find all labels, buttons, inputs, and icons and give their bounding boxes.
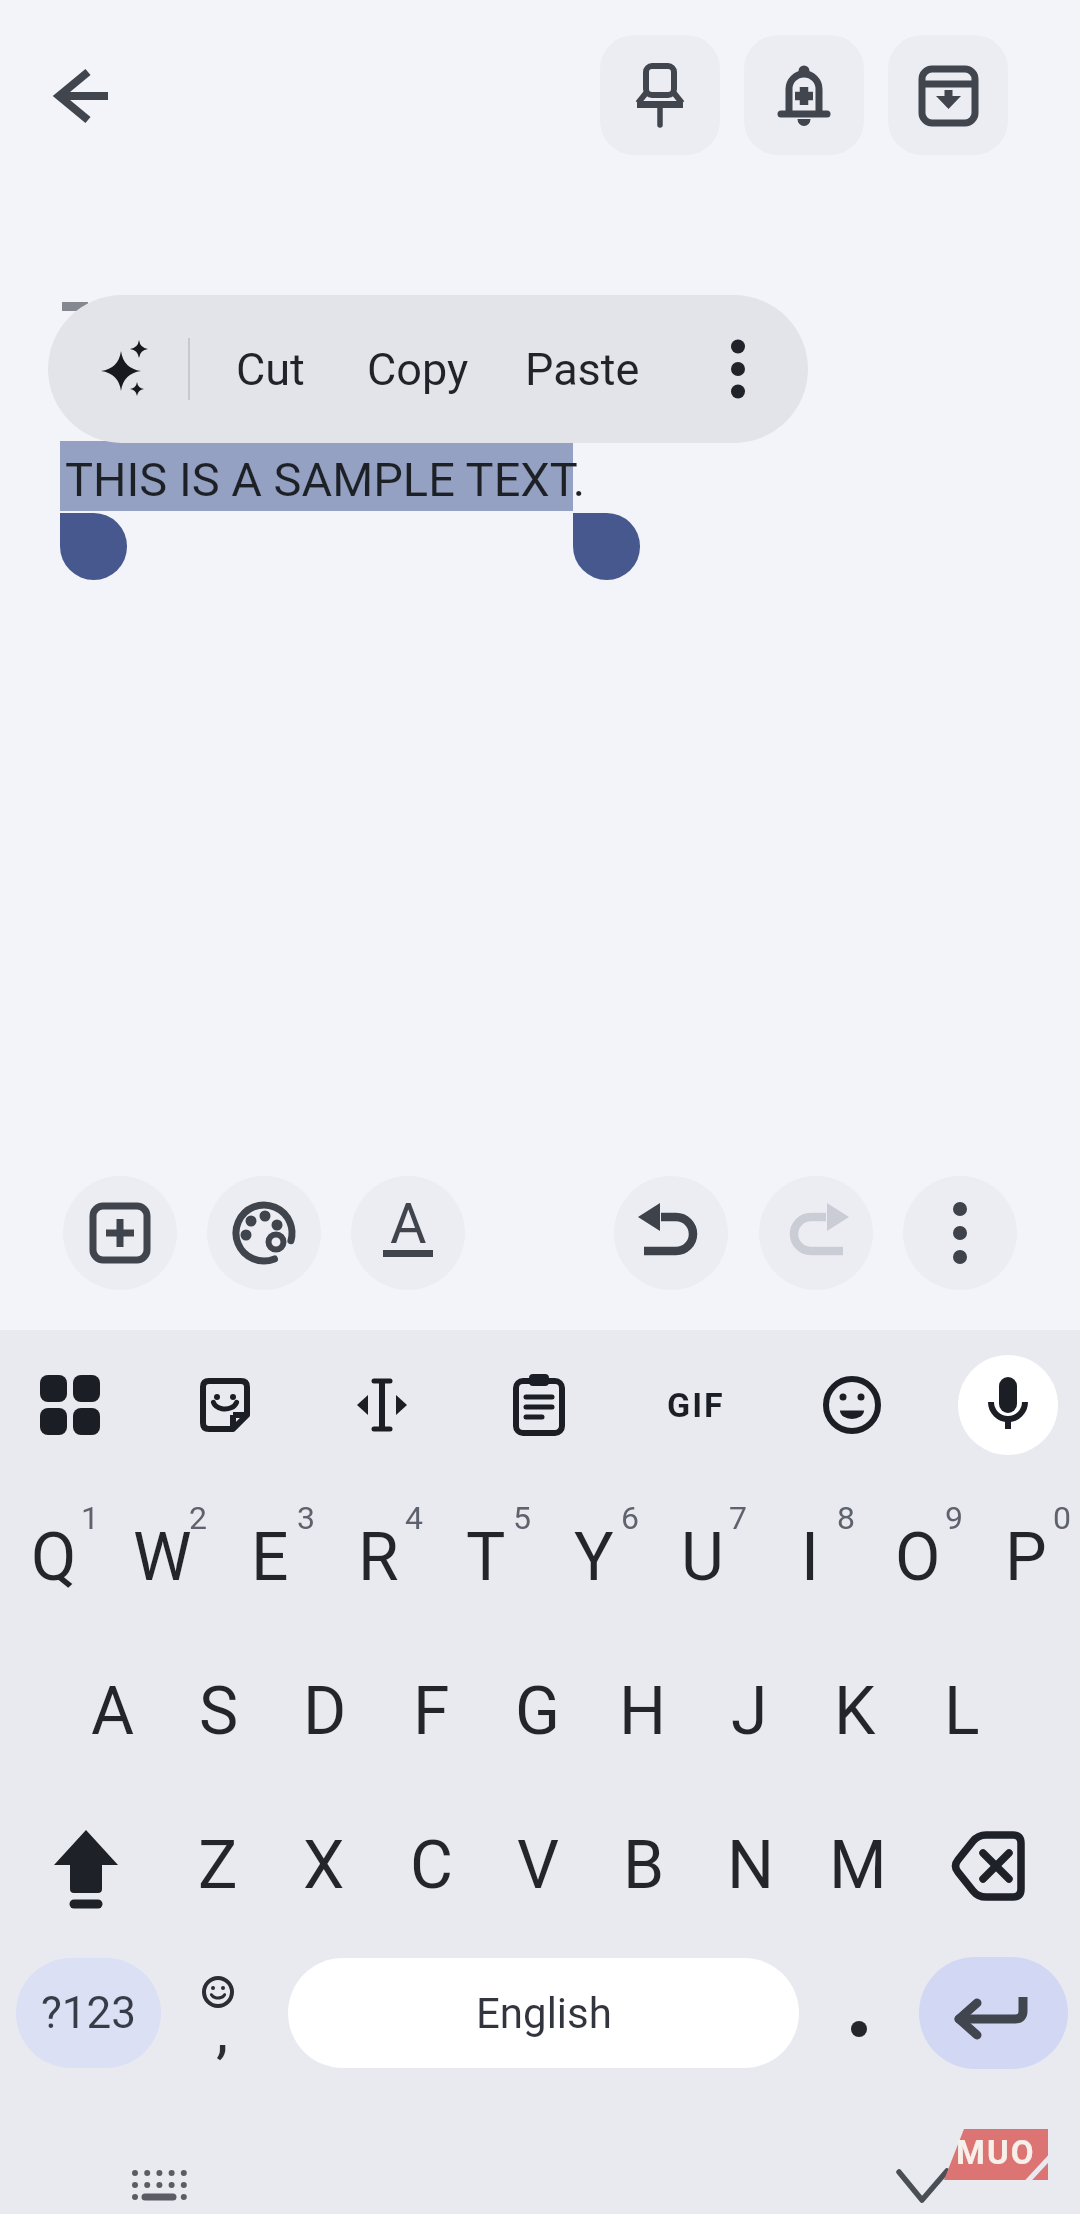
button[interactable]: Paste	[517, 295, 647, 443]
staticText: D	[303, 1673, 347, 1750]
button[interactable]: K	[801, 1671, 909, 1751]
button[interactable]: I	[756, 1517, 864, 1597]
staticText: 8	[837, 1499, 855, 1537]
button[interactable]: Cut	[210, 295, 330, 443]
button[interactable]: O	[864, 1517, 972, 1597]
staticText: 5	[513, 1499, 531, 1537]
staticText: C	[410, 1827, 453, 1904]
button[interactable]	[698, 329, 778, 409]
staticText: 2	[189, 1499, 207, 1537]
button[interactable]	[26, 1805, 146, 1925]
staticText: S	[199, 1673, 239, 1750]
button[interactable]	[903, 1176, 1017, 1290]
button[interactable]	[93, 337, 157, 401]
staticText: J	[731, 1673, 768, 1750]
staticText: Y	[574, 1519, 614, 1596]
staticText: E	[251, 1519, 289, 1596]
button[interactable]: Y	[540, 1517, 648, 1597]
staticText: 9	[945, 1499, 963, 1537]
button[interactable]: W	[108, 1517, 216, 1597]
button[interactable]: Z	[164, 1825, 272, 1905]
staticText: V	[517, 1827, 560, 1904]
staticText: Cut	[236, 343, 305, 396]
button[interactable]: C	[377, 1825, 485, 1905]
button[interactable]	[170, 1958, 270, 2068]
button[interactable]: B	[590, 1825, 698, 1905]
button[interactable]: T	[432, 1517, 540, 1597]
button[interactable]	[38, 1373, 102, 1437]
button[interactable]	[63, 1176, 177, 1290]
staticText: ,	[216, 1994, 229, 2067]
button[interactable]: J	[695, 1671, 803, 1751]
button[interactable]: F	[377, 1671, 485, 1751]
staticText: N	[727, 1827, 775, 1904]
staticText: GIF	[667, 1385, 725, 1425]
staticText: W	[133, 1519, 192, 1596]
button[interactable]: H	[589, 1671, 697, 1751]
staticText: 0	[1053, 1499, 1071, 1537]
button[interactable]	[207, 1176, 321, 1290]
button[interactable]: A	[59, 1671, 167, 1751]
staticText: G	[515, 1673, 560, 1750]
button[interactable]	[352, 1375, 412, 1435]
staticText: P	[1005, 1519, 1047, 1596]
staticText: F	[413, 1673, 450, 1750]
staticText: K	[834, 1673, 876, 1750]
staticText: MUO	[956, 2133, 1036, 2172]
button[interactable]: A	[351, 1176, 465, 1290]
button[interactable]: V	[484, 1825, 592, 1905]
button[interactable]	[919, 1957, 1068, 2069]
button[interactable]	[614, 1176, 728, 1290]
button[interactable]	[958, 1355, 1058, 1455]
button[interactable]: P	[972, 1517, 1080, 1597]
button[interactable]	[744, 35, 864, 155]
button[interactable]	[509, 1373, 569, 1437]
button[interactable]: N	[697, 1825, 805, 1905]
staticText: I	[801, 1519, 819, 1596]
button[interactable]	[888, 35, 1008, 155]
button[interactable]: Copy	[353, 295, 483, 443]
staticText: 3	[297, 1499, 315, 1537]
staticText: THIS IS A SAMPLE TEXT.	[65, 452, 586, 507]
staticText: 6	[621, 1499, 639, 1537]
button[interactable]: R	[324, 1517, 432, 1597]
staticText: H	[619, 1673, 667, 1750]
staticText: M	[829, 1827, 887, 1904]
staticText: B	[623, 1827, 665, 1904]
button[interactable]: U	[648, 1517, 756, 1597]
staticText: A	[390, 1191, 427, 1257]
staticText: L	[944, 1673, 980, 1750]
button[interactable]: M	[804, 1825, 912, 1905]
button[interactable]: E	[216, 1517, 324, 1597]
staticText: T	[466, 1519, 506, 1596]
button[interactable]: GIF	[646, 1375, 746, 1435]
button[interactable]	[822, 1375, 882, 1435]
button[interactable]	[130, 2164, 190, 2204]
button[interactable]	[889, 2158, 959, 2210]
button[interactable]	[30, 56, 130, 136]
staticText: O	[895, 1519, 941, 1596]
staticText: Z	[198, 1827, 238, 1904]
button[interactable]: G	[483, 1671, 591, 1751]
button[interactable]: S	[165, 1671, 273, 1751]
button[interactable]: D	[271, 1671, 379, 1751]
staticText: U	[681, 1519, 724, 1596]
button[interactable]	[195, 1375, 255, 1435]
button[interactable]	[759, 1176, 873, 1290]
button[interactable]	[930, 1805, 1050, 1925]
staticText: X	[303, 1827, 345, 1904]
button[interactable]: X	[270, 1825, 378, 1905]
staticText: R	[358, 1519, 399, 1596]
staticText: 7	[729, 1499, 747, 1537]
staticText: 4	[405, 1499, 423, 1537]
staticText: Q	[31, 1519, 77, 1596]
button[interactable]: L	[908, 1671, 1016, 1751]
staticText: A	[91, 1673, 135, 1750]
button[interactable]: ?123	[16, 1958, 161, 2068]
staticText: 1	[81, 1499, 99, 1537]
button[interactable]: English	[288, 1958, 799, 2068]
staticText: ?123	[41, 1987, 136, 2039]
staticText: Copy	[367, 343, 469, 396]
button[interactable]: Q	[0, 1517, 108, 1597]
button[interactable]	[600, 35, 720, 155]
